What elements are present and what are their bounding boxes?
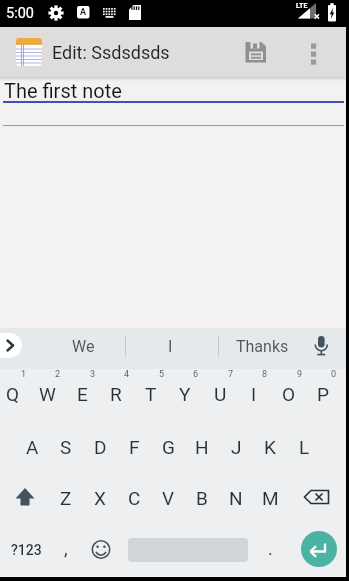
staticText: P <box>317 383 329 405</box>
button[interactable]: L <box>287 424 321 470</box>
button[interactable] <box>8 480 48 518</box>
staticText: N <box>229 487 243 509</box>
button[interactable] <box>303 38 325 68</box>
button[interactable]: W <box>30 371 64 417</box>
staticText: A <box>80 7 87 18</box>
button[interactable] <box>84 532 118 568</box>
staticText: G <box>162 436 175 458</box>
button[interactable]: M <box>253 475 287 521</box>
staticText: , <box>64 538 68 559</box>
staticText: 6 <box>193 369 199 380</box>
button[interactable] <box>0 78 346 103</box>
staticText: 5 <box>159 369 165 380</box>
staticText: . <box>268 538 273 559</box>
button[interactable] <box>238 38 274 68</box>
button[interactable]: B <box>185 475 219 521</box>
button[interactable] <box>16 38 42 66</box>
button[interactable]: . <box>255 525 285 571</box>
button[interactable]: ?123 <box>0 527 52 573</box>
staticText: 7 <box>228 369 234 380</box>
staticText: L <box>299 436 310 458</box>
staticText: The first note <box>4 79 122 101</box>
staticText: F <box>129 436 140 458</box>
button[interactable]: F <box>117 424 151 470</box>
staticText: X <box>94 487 106 509</box>
staticText: Q <box>6 383 20 405</box>
button[interactable] <box>298 480 340 518</box>
staticText: 5:00 <box>6 5 34 22</box>
button[interactable]: We <box>53 333 113 359</box>
button[interactable]: I <box>237 371 271 417</box>
button[interactable] <box>0 104 346 126</box>
button[interactable]: H <box>185 424 219 470</box>
staticText: Z <box>60 487 72 509</box>
staticText: J <box>231 436 242 458</box>
staticText: 9 <box>297 369 303 380</box>
button[interactable]: Z <box>49 475 83 521</box>
button[interactable] <box>0 333 22 358</box>
button[interactable]: K <box>253 424 287 470</box>
staticText: 0 <box>331 369 337 380</box>
staticText: 8 <box>262 369 268 380</box>
staticText: S <box>60 436 72 458</box>
button[interactable]: J <box>219 424 253 470</box>
staticText: Thanks <box>236 337 289 356</box>
staticText: K <box>264 436 276 458</box>
button[interactable]: C <box>117 475 151 521</box>
button[interactable]: U <box>203 371 237 417</box>
staticText: ?123 <box>11 542 42 558</box>
staticText: 4 <box>124 369 130 380</box>
button[interactable]: V <box>151 475 185 521</box>
staticText: I <box>251 383 257 405</box>
button[interactable]: P <box>306 371 340 417</box>
staticText: O <box>282 383 296 405</box>
button[interactable] <box>306 331 338 359</box>
staticText: Edit: Ssdsdsds <box>52 42 170 63</box>
staticText: LTE <box>296 2 308 10</box>
button[interactable]: , <box>51 525 81 571</box>
button[interactable]: N <box>219 475 253 521</box>
staticText: We <box>72 337 95 356</box>
staticText: A <box>26 436 39 458</box>
button[interactable]: Q <box>0 371 30 417</box>
button[interactable]: E <box>65 371 99 417</box>
staticText: D <box>94 436 107 458</box>
staticText: Y <box>179 383 191 405</box>
button[interactable] <box>301 531 337 567</box>
button[interactable]: T <box>134 371 168 417</box>
staticText: V <box>162 487 175 509</box>
staticText: C <box>128 487 141 509</box>
button[interactable]: I <box>140 333 200 359</box>
button[interactable]: D <box>83 424 117 470</box>
staticText: W <box>39 383 56 405</box>
button[interactable]: R <box>99 371 133 417</box>
button[interactable]: A <box>15 424 49 470</box>
staticText: M <box>262 487 279 509</box>
staticText: T <box>145 383 157 405</box>
staticText: 1 <box>21 369 27 380</box>
staticText: I <box>168 337 173 356</box>
button[interactable]: S <box>49 424 83 470</box>
button[interactable]: Y <box>168 371 202 417</box>
staticText: H <box>195 436 209 458</box>
button[interactable]: X <box>83 475 117 521</box>
button[interactable]: O <box>272 371 306 417</box>
staticText: 3 <box>90 369 96 380</box>
staticText: B <box>196 487 208 509</box>
staticText: U <box>214 383 227 405</box>
staticText: E <box>77 383 88 405</box>
button[interactable]: G <box>151 424 185 470</box>
button[interactable]: Thanks <box>222 333 302 359</box>
staticText: R <box>110 383 122 405</box>
staticText: 2 <box>55 369 61 380</box>
